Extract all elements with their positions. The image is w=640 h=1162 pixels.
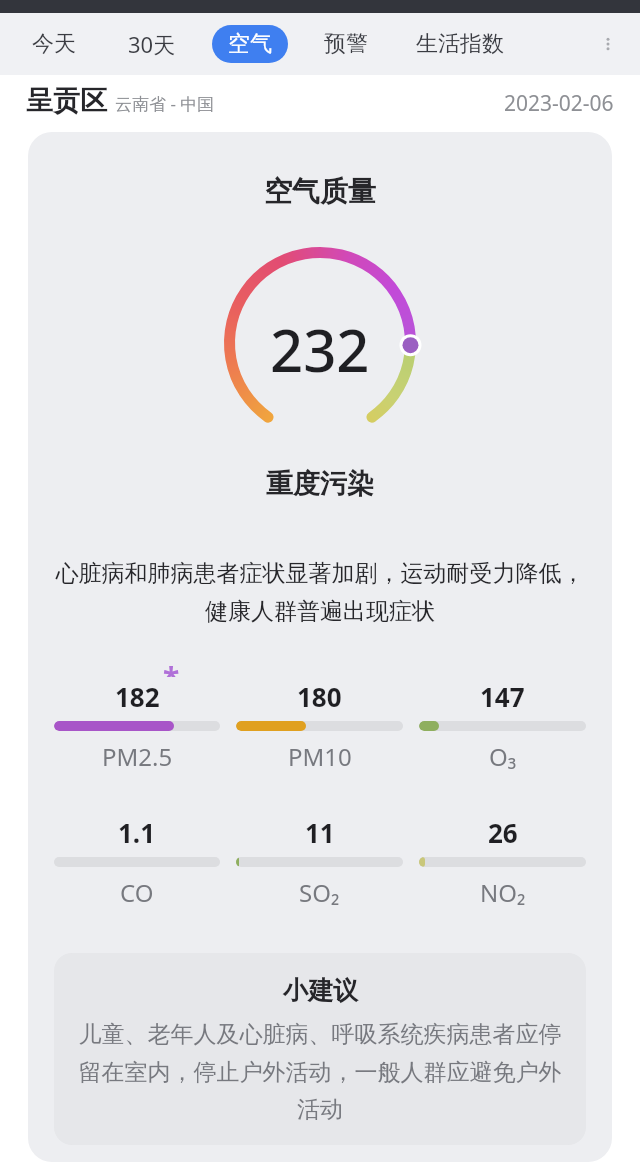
staticText: 心脏病和肺病患者症状显著加剧，运动耐受力降低，健康人群普遍出现症状 (50, 559, 590, 625)
button[interactable]: 147 (411, 659, 594, 773)
staticText: PM10 (288, 740, 352, 773)
button[interactable]: 今天 (30, 25, 78, 63)
button[interactable]: 空气 (212, 25, 288, 63)
button[interactable]: 11 (228, 795, 411, 909)
staticText: 空气 (228, 30, 272, 58)
staticText: 26 (488, 815, 518, 850)
button[interactable]: 1.1 (46, 795, 228, 909)
staticText: 重度污染 (266, 467, 374, 501)
staticText: 呈贡区 (26, 84, 107, 118)
button[interactable]: 180 (228, 659, 411, 773)
staticText: 147 (480, 679, 525, 714)
staticText: O₃ (489, 740, 517, 773)
staticText: NO₂ (480, 876, 526, 909)
staticText: PM2.5 (102, 740, 173, 773)
staticText: SO₂ (299, 876, 340, 909)
staticText: 1.1 (118, 815, 156, 850)
staticText: 30天 (128, 29, 176, 59)
button[interactable]: 空气质量 (28, 132, 612, 1162)
staticText: 今天 (32, 30, 76, 58)
staticText: 生活指数 (416, 30, 504, 58)
staticText: 2023-02-06 (504, 89, 614, 118)
staticText: 11 (305, 815, 335, 850)
staticText: 232 (270, 310, 370, 389)
staticText: 小建议 (283, 975, 358, 1006)
button[interactable]: 生活指数 (414, 25, 506, 63)
staticText: CO (120, 876, 154, 909)
button[interactable]: 小建议 (54, 953, 586, 1145)
staticText: * (163, 657, 180, 677)
staticText: 180 (297, 679, 342, 714)
staticText: 预警 (324, 30, 368, 58)
staticText: 182 (115, 679, 160, 714)
staticText: 云南省 - 中国 (115, 92, 215, 115)
button[interactable]: 26 (411, 795, 594, 909)
staticText: 空气质量 (264, 174, 376, 209)
button[interactable]: 30天 (126, 24, 178, 64)
button[interactable]: More options (586, 22, 630, 66)
staticText: 儿童、老年人及心脏病、呼吸系统疾病患者应停留在室内，停止户外活动，一般人群应避免… (76, 1020, 564, 1123)
button[interactable]: * (46, 659, 228, 773)
button[interactable]: 预警 (322, 25, 370, 63)
